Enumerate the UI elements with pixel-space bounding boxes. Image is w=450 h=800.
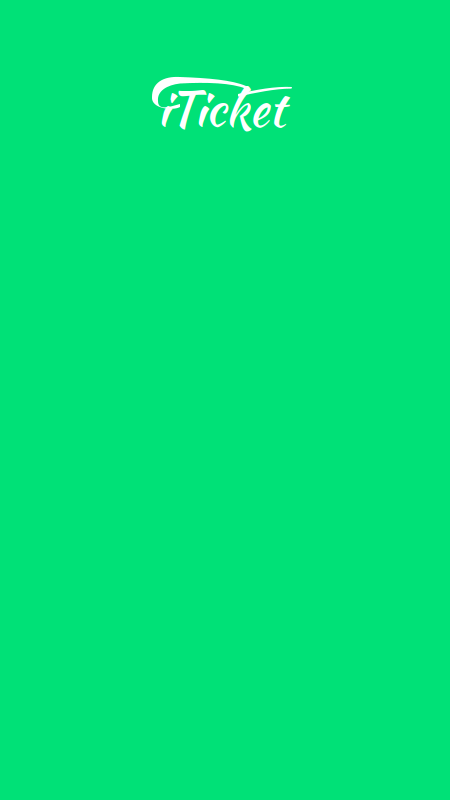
staticText: iTicket [157,74,285,144]
